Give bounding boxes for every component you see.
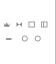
button[interactable]: Car (5, 35, 12, 42)
button[interactable]: Ring 2 (34, 35, 41, 42)
button[interactable]: Bowtie (16, 21, 23, 28)
button[interactable]: Box (28, 21, 35, 28)
button[interactable]: Ring (21, 35, 28, 42)
button[interactable]: Split (41, 21, 48, 28)
button[interactable]: Crown (3, 21, 10, 28)
